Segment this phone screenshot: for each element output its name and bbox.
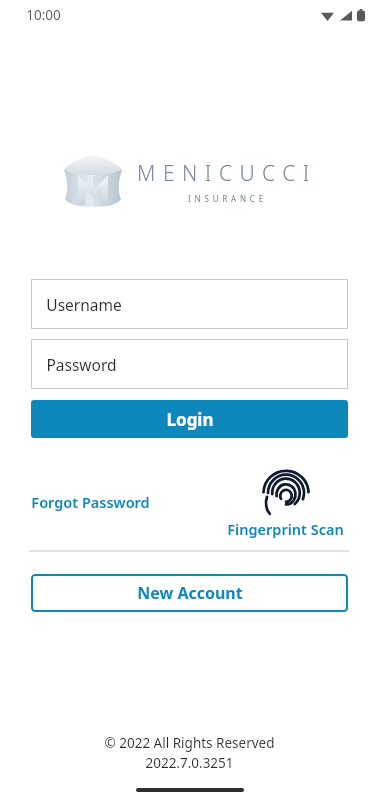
- staticText: Username: [46, 294, 122, 315]
- staticText: 10:00: [26, 6, 61, 24]
- staticText: Login: [166, 408, 214, 431]
- button[interactable]: Username: [31, 279, 348, 329]
- staticText: INSURANCE: [188, 193, 267, 204]
- staticText: Fingerprint Scan: [227, 519, 344, 539]
- staticText: Password: [46, 354, 117, 375]
- button[interactable]: Login: [31, 400, 348, 438]
- staticText: 2022.7.0.3251: [145, 754, 234, 772]
- staticText: MENICUCCI: [137, 159, 317, 188]
- button[interactable]: Fingerprint Scan: [227, 468, 344, 539]
- button[interactable]: Forgot Password: [31, 488, 150, 516]
- button[interactable]: Password: [31, 339, 348, 389]
- staticText: © 2022 All Rights Reserved: [104, 734, 275, 752]
- staticText: Forgot Password: [31, 492, 150, 512]
- staticText: New Account: [137, 582, 243, 604]
- button[interactable]: New Account: [31, 574, 348, 612]
